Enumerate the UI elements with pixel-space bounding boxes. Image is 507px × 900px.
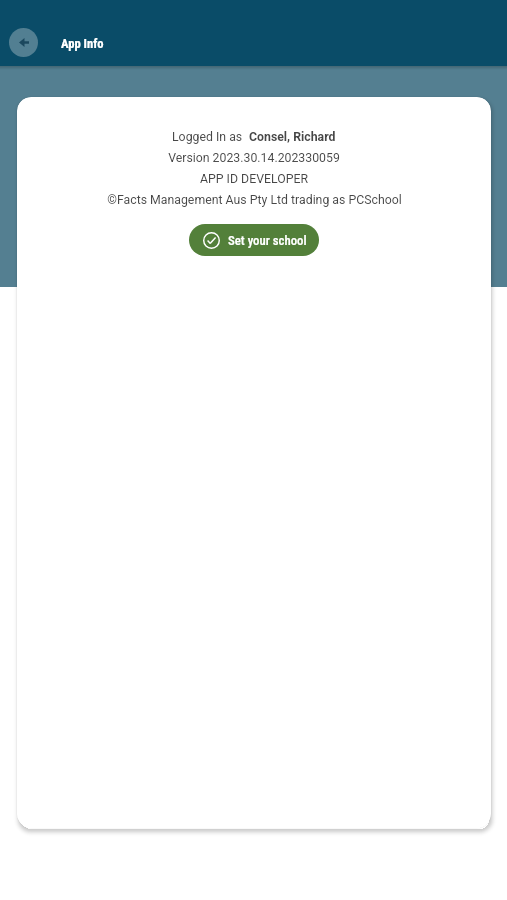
staticText: APP ID DEVELOPER <box>200 172 308 186</box>
button[interactable]: Back <box>9 28 38 57</box>
staticText: App Info <box>61 36 104 51</box>
staticText: Logged In as <box>172 130 249 144</box>
button[interactable]: Set your school <box>189 224 319 256</box>
staticText: Set your school <box>228 233 307 248</box>
staticText: ©Facts Management Aus Pty Ltd trading as… <box>107 193 402 207</box>
staticText: Consel, Richard <box>249 130 336 144</box>
staticText: Version 2023.30.14.202330059 <box>168 151 340 165</box>
